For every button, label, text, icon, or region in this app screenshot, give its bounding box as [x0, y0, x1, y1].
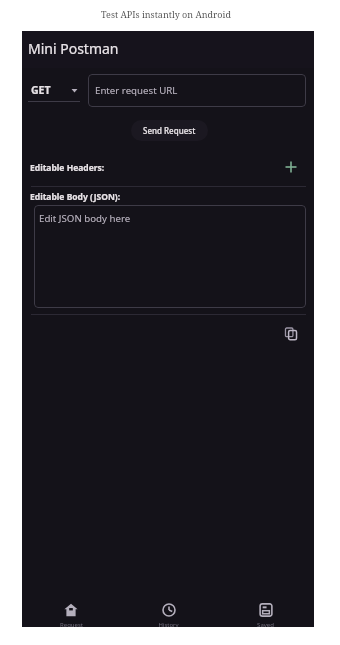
staticText: Editable Body (JSON): — [30, 191, 121, 203]
button[interactable]: Request — [22, 601, 120, 627]
staticText: GET — [31, 83, 51, 97]
staticText: Edit JSON body here — [39, 212, 131, 225]
staticText: Test APIs instantly on Android — [101, 8, 231, 20]
staticText: Editable Headers: — [30, 162, 105, 174]
button[interactable]: Saved — [217, 601, 314, 627]
button[interactable]: History — [120, 601, 217, 627]
button[interactable]: Enter request URL — [88, 74, 306, 107]
button[interactable]: Send Request — [131, 120, 208, 141]
staticText: History — [158, 621, 179, 627]
staticText: Saved — [257, 621, 274, 627]
button[interactable]: Edit JSON body here — [34, 205, 306, 308]
button[interactable]: Copy response — [282, 325, 300, 343]
button[interactable]: Add header — [281, 157, 300, 176]
staticText: Request — [60, 621, 83, 627]
staticText: Enter request URL — [95, 84, 178, 97]
staticText: Send Request — [143, 125, 196, 136]
button[interactable]: GET — [28, 83, 80, 102]
staticText: Mini Postman — [28, 39, 119, 58]
